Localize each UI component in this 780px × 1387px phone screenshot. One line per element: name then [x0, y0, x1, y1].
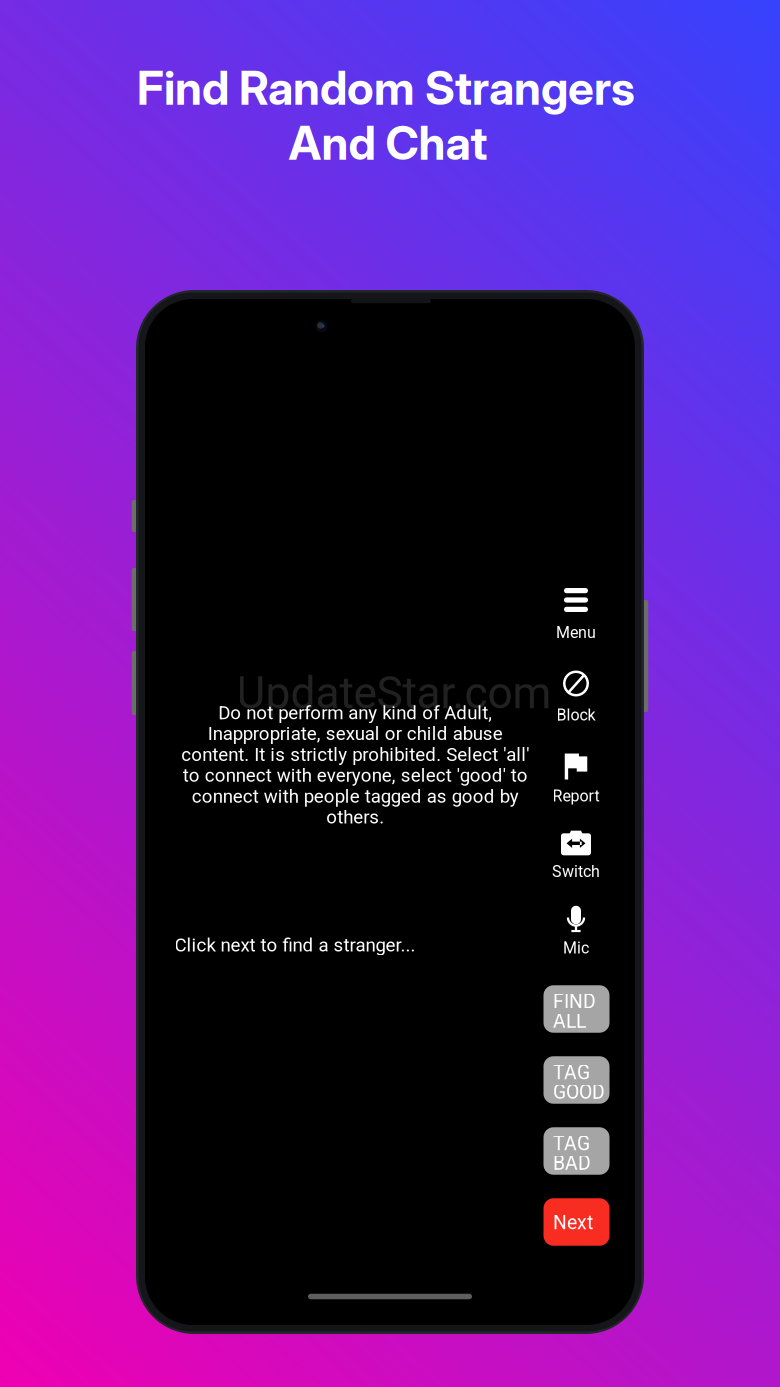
- button[interactable]: Menu: [534, 588, 618, 664]
- staticText: Click next to find a stranger...: [174, 934, 415, 956]
- staticText: Menu: [556, 623, 596, 642]
- button[interactable]: TAG: [543, 1127, 609, 1175]
- staticText: BAD: [553, 1152, 591, 1175]
- staticText: UpdateStar.com: [236, 667, 551, 719]
- staticText: Mic: [563, 939, 589, 957]
- staticText: TAG: [553, 1061, 590, 1084]
- staticText: And Chat: [288, 115, 487, 171]
- staticText: Report: [552, 787, 599, 805]
- staticText: ALL: [553, 1010, 586, 1033]
- staticText: Do not perform any kind of Adult, Inappr…: [181, 702, 529, 828]
- button[interactable]: TAG: [543, 1056, 609, 1104]
- staticText: FIND: [553, 990, 596, 1013]
- staticText: TAG: [553, 1132, 590, 1155]
- button[interactable]: Switch: [534, 831, 618, 904]
- staticText: Block: [556, 706, 595, 724]
- button[interactable]: Report: [534, 753, 618, 829]
- button[interactable]: FIND: [543, 985, 609, 1033]
- staticText: Switch: [552, 862, 600, 881]
- button[interactable]: Mic: [534, 902, 618, 981]
- staticText: GOOD: [553, 1081, 605, 1104]
- staticText: Find Random Strangers: [137, 60, 635, 116]
- button[interactable]: Block: [534, 671, 618, 747]
- button[interactable]: Next: [543, 1198, 609, 1246]
- staticText: Next: [553, 1211, 593, 1234]
